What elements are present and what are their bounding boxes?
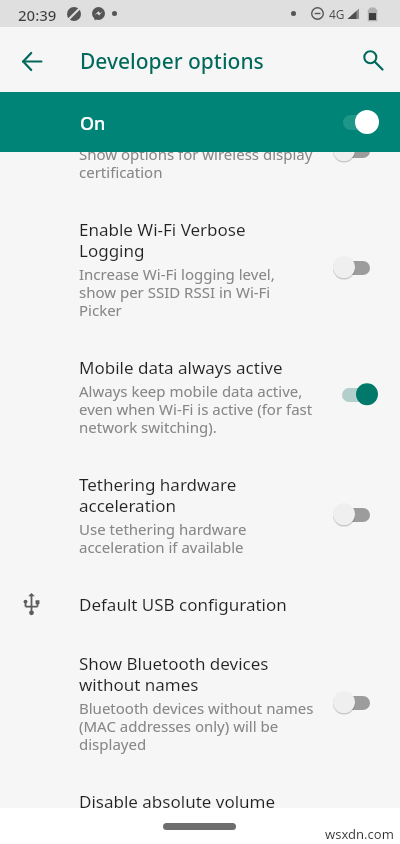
- staticText: Disable absolute volume: [79, 790, 276, 808]
- button[interactable]: Switch off: [333, 137, 379, 165]
- staticText: Enable Wi-Fi Verbose Logging: [79, 218, 246, 262]
- staticText: Show Bluetooth devices without names: [79, 652, 269, 696]
- button[interactable]: Default USB configuration: [0, 593, 400, 635]
- button[interactable]: Mobile data always active: [0, 356, 400, 463]
- staticText: On: [80, 111, 106, 136]
- button[interactable]: Show Bluetooth devices without names: [0, 652, 400, 777]
- button[interactable]: Tethering hardware acceleration: [0, 473, 400, 580]
- staticText: Always keep mobile data active, even whe…: [79, 381, 313, 437]
- staticText: wsxdn.com: [325, 825, 394, 843]
- staticText: Default USB configuration: [79, 593, 287, 616]
- button[interactable]: Disable absolute volume: [0, 790, 400, 808]
- button[interactable]: Search: [351, 27, 391, 92]
- staticText: Bluetooth devices without names (MAC add…: [79, 698, 314, 754]
- staticText: Wireless display certification: [79, 121, 306, 144]
- staticText: Show options for wireless display certif…: [79, 144, 313, 182]
- button[interactable]: Switch off: [333, 501, 379, 529]
- button[interactable]: Switch on: [333, 381, 379, 409]
- button[interactable]: Enable Wi-Fi Verbose Logging: [0, 218, 400, 343]
- button[interactable]: Navigate up: [12, 27, 52, 92]
- staticText: Tethering hardware acceleration: [79, 473, 237, 517]
- button[interactable]: Switch off: [333, 689, 379, 717]
- staticText: Increase Wi-Fi logging level, show per S…: [79, 264, 275, 320]
- staticText: Use tethering hardware acceleration if a…: [79, 519, 247, 557]
- staticText: 20:39: [18, 5, 57, 25]
- staticText: Developer options: [80, 47, 264, 76]
- button[interactable]: Developer options switch: [331, 108, 379, 136]
- button[interactable]: Switch off: [333, 254, 379, 282]
- staticText: 4G: [329, 6, 345, 22]
- staticText: Mobile data always active: [79, 356, 283, 379]
- button[interactable]: Wireless display certification: [0, 121, 400, 193]
